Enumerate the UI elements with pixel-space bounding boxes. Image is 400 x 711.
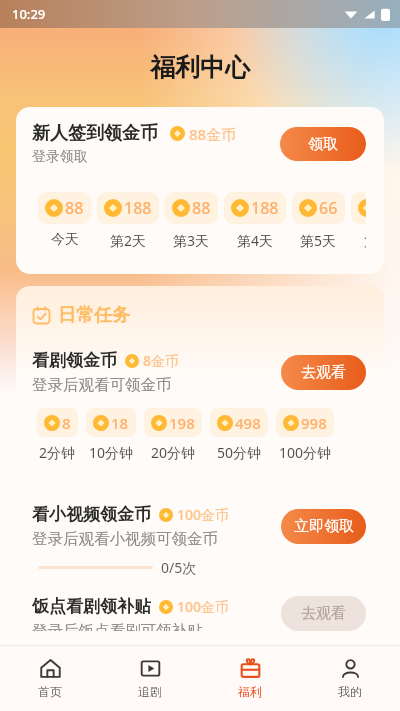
staticText: 福利 [238,684,262,699]
staticText: 88金币 [189,124,237,144]
staticText: 88 [65,197,84,219]
staticText: 8 [62,413,71,433]
staticText: 新人签到领金币 [32,122,158,145]
staticText: 198 [169,413,195,433]
staticText: 498 [235,413,261,433]
button[interactable]: 去观看 [281,596,366,631]
staticText: 立即领取 [294,517,354,536]
staticText: 88 [192,197,211,219]
staticText: 追剧 [138,684,162,699]
staticText: 看小视频领金币 [32,504,151,525]
staticText: 登录后观看小视频可领金币 [32,529,218,549]
staticText: 20分钟 [151,443,196,462]
staticText: 18 [111,413,129,433]
staticText: 50分钟 [217,443,262,462]
button[interactable]: 追剧 [100,652,200,705]
staticText: 看剧领金币 [32,350,117,371]
staticText: 10:29 [12,5,46,23]
staticText: 日常任务 [58,304,130,327]
staticText: 100分钟 [279,443,332,462]
staticText: 8金币 [143,351,180,370]
button[interactable]: 首页 [0,652,100,705]
staticText: 66 [319,197,338,219]
staticText: 第6天 [364,231,366,250]
staticText: 我的 [338,684,362,699]
staticText: 首页 [38,684,62,699]
staticText: 登录后饭点看剧可领补贴 [32,621,203,631]
staticText: 第4天 [237,231,274,250]
staticText: 第5天 [300,231,337,250]
staticText: 今天 [51,231,79,249]
button[interactable]: 福利 [200,652,300,705]
staticText: 10分钟 [89,443,134,462]
staticText: 100金币 [177,597,230,616]
staticText: 第2天 [110,231,147,250]
staticText: 100金币 [177,505,230,524]
staticText: 998 [301,413,327,433]
button[interactable]: 立即领取 [281,509,366,544]
staticText: 188 [124,197,152,219]
staticText: 去观看 [301,604,346,623]
button[interactable]: 领取 [280,127,366,161]
staticText: 登录后观看可领金币 [32,375,172,395]
staticText: 0/5次 [161,558,197,577]
staticText: 登录领取 [32,148,88,166]
staticText: 福利中心 [150,52,250,83]
staticText: 去观看 [301,363,346,382]
staticText: 2分钟 [39,443,76,462]
staticText: 188 [251,197,279,219]
staticText: 第3天 [173,231,210,250]
staticText: 领取 [308,135,338,154]
button[interactable]: 去观看 [281,355,366,390]
button[interactable]: 我的 [300,652,400,705]
staticText: 饭点看剧领补贴 [32,596,151,617]
